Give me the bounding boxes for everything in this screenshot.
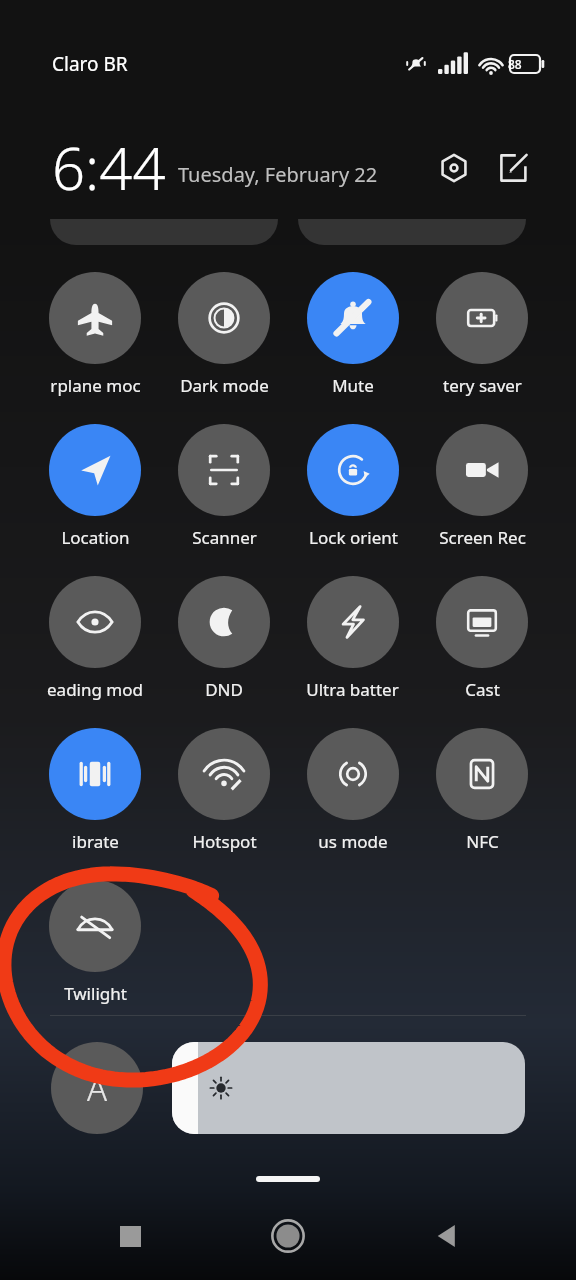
button[interactable]: Screen Rec — [436, 424, 528, 549]
button[interactable]: Brightness slider — [172, 1042, 525, 1134]
button[interactable]: Settings — [432, 146, 476, 190]
staticText: ibrate — [72, 830, 119, 853]
button[interactable]: NFC — [436, 728, 528, 853]
button[interactable] — [298, 219, 526, 245]
button[interactable]: Ultra batter — [306, 576, 399, 701]
staticText: Lock orient — [309, 526, 398, 549]
staticText: DND — [205, 678, 243, 701]
button[interactable]: DND — [178, 576, 270, 701]
staticText: Hotspot — [192, 830, 257, 853]
staticText: A — [87, 1066, 108, 1111]
button[interactable]: tery saver — [436, 272, 528, 397]
staticText: Location — [61, 526, 130, 549]
staticText: Twilight — [64, 982, 127, 1005]
staticText: Cast — [465, 678, 500, 701]
button[interactable]: Back — [418, 1208, 474, 1264]
staticText: rplane moc — [50, 374, 141, 397]
staticText: Scanner — [192, 526, 257, 549]
staticText: Screen Rec — [439, 526, 526, 549]
staticText: 6:44 — [52, 128, 166, 207]
button[interactable]: Recents — [102, 1208, 158, 1264]
button[interactable]: Scanner — [178, 424, 270, 549]
staticText: us mode — [318, 830, 388, 853]
button[interactable]: Dark mode — [178, 272, 270, 397]
staticText: Claro BR — [52, 51, 128, 77]
staticText: tery saver — [443, 374, 522, 397]
button[interactable]: Edit — [492, 146, 536, 190]
button[interactable]: Hotspot — [178, 728, 270, 853]
button[interactable]: Home — [260, 1208, 316, 1264]
button[interactable]: Auto brightness — [51, 1042, 143, 1134]
button[interactable] — [50, 219, 278, 245]
button[interactable]: eading mod — [47, 576, 143, 701]
button[interactable]: Location — [49, 424, 141, 549]
staticText: Ultra batter — [306, 678, 399, 701]
staticText: 88 — [508, 56, 522, 72]
button[interactable]: Lock orient — [307, 424, 399, 549]
button[interactable]: Mute — [307, 272, 399, 397]
button[interactable]: us mode — [307, 728, 399, 853]
staticText: Tuesday, February 22 — [178, 161, 378, 188]
staticText: Dark mode — [180, 374, 269, 397]
staticText: eading mod — [47, 678, 143, 701]
staticText: NFC — [466, 830, 499, 853]
button[interactable]: Cast — [436, 576, 528, 701]
staticText: Mute — [332, 374, 374, 397]
button[interactable]: ibrate — [49, 728, 141, 853]
button[interactable]: Twilight — [49, 880, 141, 1005]
button[interactable]: rplane moc — [49, 272, 141, 397]
